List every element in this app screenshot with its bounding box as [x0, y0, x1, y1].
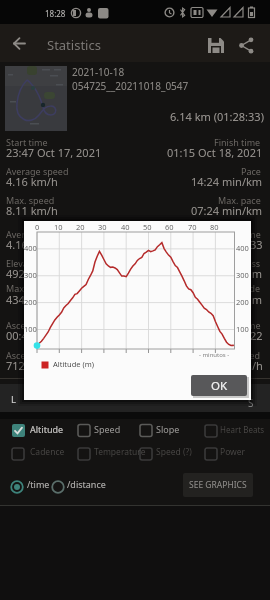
staticText: Temperature [94, 446, 146, 458]
staticText: S [248, 396, 254, 410]
staticText: 6.14 km (01:28:33) [170, 109, 264, 124]
staticText: Max. pace [218, 194, 261, 206]
button[interactable] [8, 478, 50, 496]
staticText: 14:24 min/km [191, 174, 263, 189]
staticText: 492 m [6, 266, 39, 281]
staticText: 00:48:10 [6, 328, 50, 343]
staticText: Max. speed [6, 194, 55, 206]
staticText: Elevation gain [6, 257, 66, 269]
staticText: Statistics [47, 36, 101, 54]
staticText: 01:05:33 [219, 237, 263, 252]
staticText: 685 m/h [220, 358, 263, 373]
staticText: 054725__20211018_0547 [72, 79, 189, 93]
staticText: 712 m/h [6, 358, 49, 373]
button[interactable] [232, 31, 260, 57]
staticText: 18:28 [45, 8, 66, 19]
staticText: 70 [188, 222, 197, 232]
button[interactable] [5, 66, 67, 131]
staticText: 100 [236, 324, 249, 334]
staticText: 8.11 km/h [6, 203, 58, 218]
staticText: /time [27, 478, 50, 490]
button[interactable] [8, 444, 68, 464]
staticText: Slope [156, 423, 180, 435]
staticText: 300 [236, 270, 249, 280]
staticText: Elevation loss [203, 257, 261, 269]
button[interactable] [137, 444, 192, 464]
staticText: 400 [236, 243, 249, 253]
staticText: 00:40:22 [219, 328, 263, 343]
staticText: Descent time [205, 319, 261, 331]
staticText: - minutos - [199, 351, 230, 359]
staticText: Moving time [208, 228, 261, 240]
staticText: 20 [76, 222, 85, 232]
staticText: 23:47 Oct 17, 2021 [6, 145, 102, 160]
staticText: 10 [54, 222, 63, 232]
staticText: Ascending time [6, 319, 72, 331]
button[interactable] [200, 444, 258, 464]
staticText: 0 [35, 222, 40, 232]
button[interactable] [137, 420, 192, 440]
staticText: 4.16 km/h [6, 237, 58, 252]
staticText: 80 [210, 222, 219, 232]
staticText: OK [211, 378, 228, 394]
staticText: Min. altitude [207, 282, 261, 294]
button[interactable]: OK [191, 375, 247, 396]
staticText: 512 m [230, 266, 263, 281]
staticText: Heart Beats [220, 424, 265, 435]
staticText: Speed (?) [156, 446, 192, 458]
staticText: 30 [98, 222, 107, 232]
staticText: 2021-10-18 [72, 65, 125, 79]
staticText: Average speed [6, 165, 69, 177]
staticText: 4.16 km/h [6, 174, 58, 189]
staticText: Max. altitude [6, 282, 62, 294]
staticText: Pace [241, 165, 261, 177]
staticText: 434 m [6, 292, 39, 307]
staticText: 200 [236, 297, 249, 307]
staticText: SEE GRAPHICS [189, 479, 247, 491]
button[interactable] [200, 420, 258, 440]
staticText: 60 [165, 222, 174, 232]
staticText: Cadence [30, 446, 65, 458]
staticText: 300 [24, 270, 37, 280]
staticText: Start time [6, 136, 48, 148]
button[interactable]: SEE GRAPHICS [183, 473, 253, 497]
staticText: 50 [143, 222, 152, 232]
staticText: Finish time [214, 136, 261, 148]
staticText: L [11, 393, 16, 406]
staticText: 155 m [230, 292, 263, 307]
button[interactable] [202, 31, 230, 57]
staticText: 01:15 Oct 18, 2021 [167, 145, 263, 160]
staticText: Power [220, 446, 246, 458]
staticText: Altitude [30, 423, 64, 435]
staticText: Altitude (m) [53, 359, 95, 369]
button[interactable] [8, 420, 68, 440]
button[interactable] [74, 444, 129, 464]
staticText: Average speed mov. [6, 228, 92, 240]
button[interactable] [74, 420, 129, 440]
staticText: Ascent speed [6, 349, 63, 361]
staticText: Descent speed [198, 349, 261, 361]
staticText: 40 [121, 222, 130, 232]
button[interactable] [4, 30, 32, 56]
staticText: 200 [24, 297, 37, 307]
button[interactable] [0, 24, 270, 62]
staticText: /distance [67, 478, 106, 490]
button[interactable] [50, 478, 102, 496]
staticText: 400 [24, 243, 37, 253]
staticText: 07:24 min/km [191, 203, 263, 218]
staticText: Speed [94, 423, 121, 435]
staticText: 100 [24, 324, 37, 334]
